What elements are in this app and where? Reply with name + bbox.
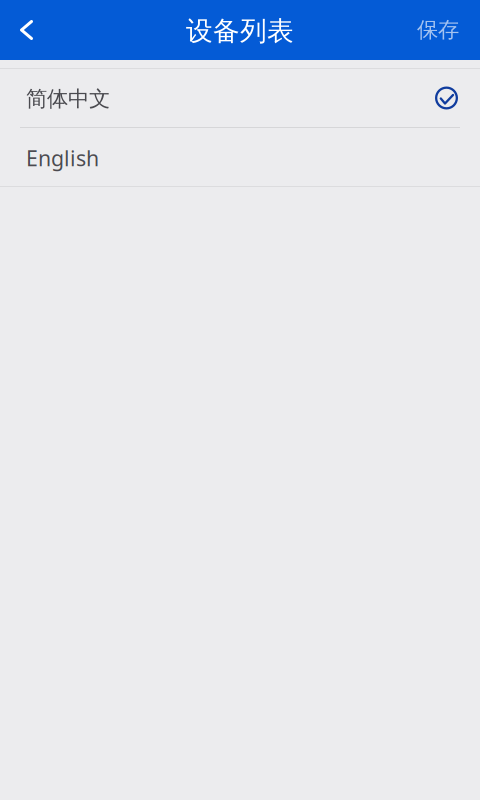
button[interactable]: English — [0, 128, 480, 186]
button[interactable]: 简体中文 — [0, 69, 480, 127]
button[interactable]: 保存 — [408, 0, 480, 60]
staticText: English — [26, 144, 99, 172]
staticText: 设备列表 — [186, 15, 294, 47]
staticText: 保存 — [417, 17, 459, 43]
button[interactable]: Back — [0, 0, 58, 60]
staticText: 简体中文 — [26, 86, 110, 112]
